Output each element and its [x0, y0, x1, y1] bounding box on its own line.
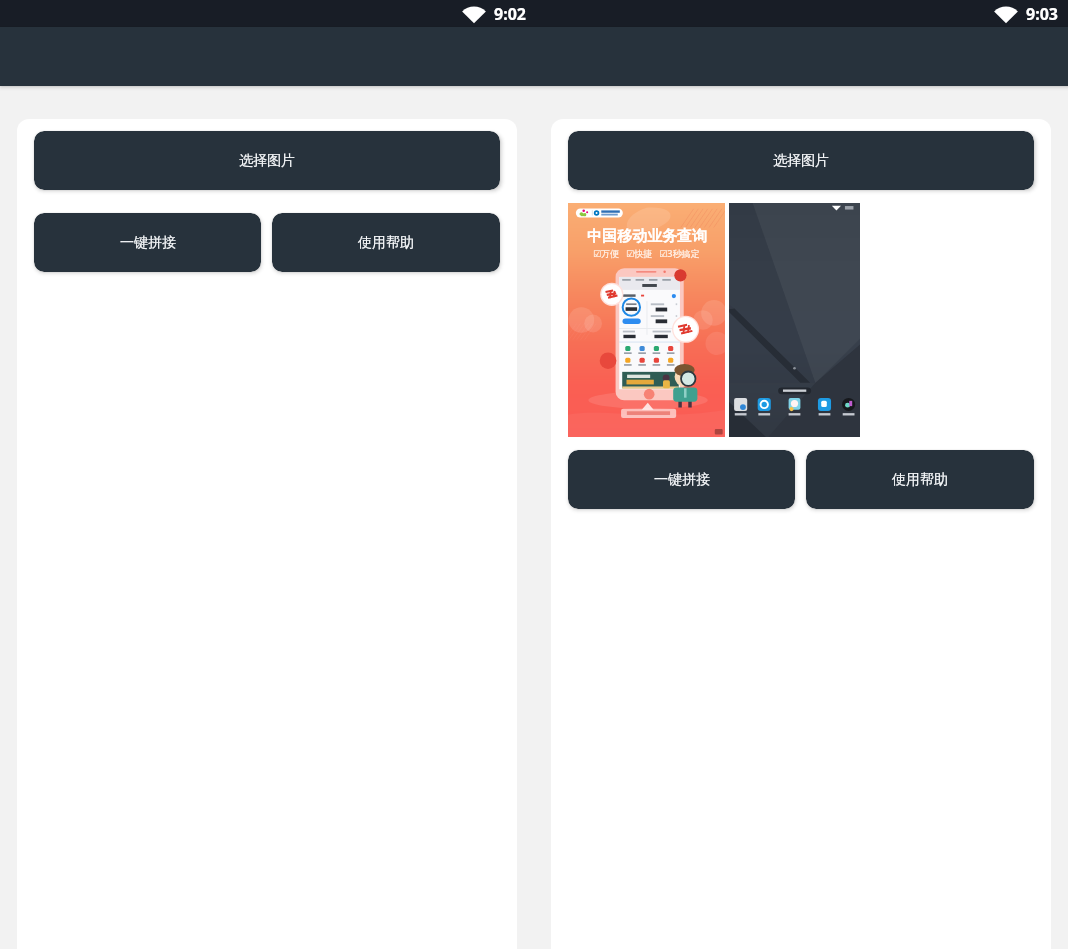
button[interactable]: 一键拼接 [568, 450, 795, 509]
button[interactable]: 已选图片 1 [568, 203, 725, 437]
other: Wi-Fi [464, 6, 484, 22]
staticText: 选择图片 [773, 152, 829, 170]
staticText: 9:02 [494, 3, 526, 25]
staticText: 一键拼接 [654, 471, 710, 489]
button[interactable]: 已选图片 2 [729, 203, 860, 437]
button[interactable]: 选择图片 [568, 131, 1034, 190]
other: Wi-Fi [996, 6, 1016, 22]
staticText: 使用帮助 [358, 234, 414, 252]
button[interactable]: 一键拼接 [34, 213, 261, 272]
staticText: 中国移动业务查询 [587, 227, 707, 246]
staticText: 9:03 [1026, 3, 1058, 25]
staticText: 选择图片 [239, 152, 295, 170]
staticText: ☑万便 ☑快捷 ☑3秒搞定 [593, 247, 700, 259]
staticText: 使用帮助 [892, 471, 948, 489]
button[interactable]: 使用帮助 [806, 450, 1034, 509]
button[interactable]: 选择图片 [34, 131, 500, 190]
button[interactable]: 使用帮助 [272, 213, 500, 272]
staticText: 一键拼接 [120, 234, 176, 252]
